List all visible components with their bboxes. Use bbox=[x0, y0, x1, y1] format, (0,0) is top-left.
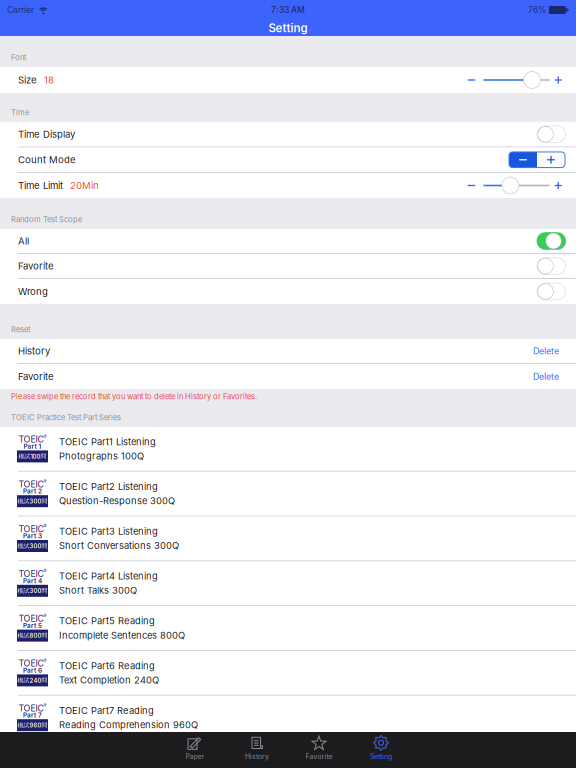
staticText: Please swipe the record that you want to… bbox=[11, 392, 257, 401]
staticText: Time Limit bbox=[18, 180, 63, 191]
button[interactable]: Increase bbox=[554, 179, 562, 191]
staticText: Count Mode bbox=[18, 154, 76, 165]
button[interactable]: Time Display bbox=[0, 122, 576, 147]
staticText: Photographs 100Q bbox=[59, 450, 144, 462]
staticText: Delete bbox=[533, 346, 559, 356]
staticText: History bbox=[245, 752, 269, 761]
staticText: Short Talks 300Q bbox=[59, 585, 137, 596]
staticText: 模試300問 bbox=[17, 587, 47, 594]
staticText: ® bbox=[43, 524, 46, 529]
staticText: Favorite bbox=[18, 260, 54, 272]
staticText: Part 5 bbox=[23, 622, 42, 629]
button[interactable]: Count Mode bbox=[0, 147, 576, 173]
staticText: TOEIC Part5 Reading bbox=[59, 615, 155, 627]
staticText: Favorite bbox=[305, 752, 332, 761]
staticText: Part 2 bbox=[23, 487, 42, 495]
staticText: Incomplete Sentences 800Q bbox=[59, 630, 185, 641]
staticText: Reading Comprehension 960Q bbox=[59, 719, 198, 730]
button[interactable]: TOEIC bbox=[0, 696, 576, 741]
staticText: Favorite bbox=[18, 371, 54, 382]
staticText: 模試100問 bbox=[18, 453, 46, 460]
staticText: Delete bbox=[533, 371, 559, 382]
staticText: Time bbox=[11, 108, 29, 117]
button[interactable]: TOEIC bbox=[0, 651, 576, 696]
staticText: Part 6 bbox=[23, 666, 42, 674]
staticText: 18 bbox=[44, 74, 54, 86]
staticText: Time Display bbox=[18, 128, 75, 140]
staticText: ® bbox=[43, 658, 46, 664]
staticText: Question-Response 300Q bbox=[59, 495, 175, 506]
staticText: Part 7 bbox=[23, 711, 42, 719]
button[interactable]: Decrease bbox=[467, 179, 475, 191]
staticText: Wrong bbox=[18, 286, 48, 297]
staticText: Size bbox=[18, 74, 37, 86]
button[interactable]: Favorite bbox=[0, 364, 576, 389]
button[interactable]: Count up bbox=[537, 152, 565, 167]
staticText: TOEIC bbox=[18, 658, 43, 669]
button[interactable]: Count down bbox=[509, 152, 537, 167]
staticText: ® bbox=[43, 434, 46, 440]
staticText: TOEIC bbox=[18, 613, 43, 624]
staticText: TOEIC Part1 Listening bbox=[59, 436, 156, 447]
staticText: ® bbox=[43, 703, 46, 708]
button[interactable]: Setting bbox=[350, 732, 412, 768]
staticText: ® bbox=[43, 613, 46, 619]
staticText: Part 3 bbox=[23, 532, 42, 540]
button[interactable]: TOEIC bbox=[0, 561, 576, 606]
staticText: Carrier bbox=[7, 5, 34, 15]
staticText: Reset bbox=[11, 325, 30, 334]
button[interactable]: Wrong bbox=[0, 279, 576, 304]
button[interactable]: Favorite bbox=[0, 254, 576, 279]
staticText: TOEIC bbox=[18, 703, 43, 713]
staticText: TOEIC Part4 Listening bbox=[59, 570, 158, 582]
button[interactable]: Favorite bbox=[288, 732, 350, 768]
button[interactable]: All bbox=[0, 229, 576, 254]
staticText: Font bbox=[11, 53, 26, 62]
staticText: 模試240問 bbox=[17, 677, 47, 684]
button[interactable]: Size bbox=[0, 67, 576, 93]
staticText: 模試300問 bbox=[17, 542, 47, 550]
button[interactable]: Decrease bbox=[467, 74, 475, 86]
button[interactable]: TOEIC bbox=[0, 427, 576, 472]
staticText: TOEIC Part3 Listening bbox=[59, 526, 158, 537]
staticText: Random Test Scope bbox=[11, 215, 82, 224]
staticText: Text Completion 240Q bbox=[59, 674, 159, 686]
staticText: ® bbox=[43, 568, 46, 574]
button[interactable]: Increase bbox=[554, 74, 562, 86]
staticText: Setting bbox=[268, 21, 307, 35]
staticText: TOEIC bbox=[18, 434, 43, 445]
staticText: 20Min bbox=[70, 180, 99, 191]
button[interactable]: Delete bbox=[533, 346, 559, 356]
staticText: Part 4 bbox=[23, 577, 42, 585]
staticText: History bbox=[18, 345, 50, 357]
staticText: 模試960問 bbox=[17, 721, 47, 729]
button[interactable]: History bbox=[226, 732, 288, 768]
staticText: Short Conversations 300Q bbox=[59, 540, 179, 551]
staticText: Paper bbox=[185, 752, 204, 761]
staticText: TOEIC Part2 Listening bbox=[59, 481, 158, 492]
button[interactable]: History bbox=[0, 339, 576, 364]
staticText: TOEIC bbox=[18, 524, 43, 534]
button[interactable]: Paper bbox=[164, 732, 226, 768]
button[interactable]: TOEIC bbox=[0, 472, 576, 517]
staticText: TOEIC Practice Test Part Series bbox=[11, 413, 121, 422]
staticText: TOEIC bbox=[18, 568, 43, 579]
button[interactable]: TOEIC bbox=[0, 517, 576, 561]
staticText: Part 1 bbox=[23, 442, 41, 450]
staticText: Setting bbox=[370, 752, 392, 761]
staticText: TOEIC Part7 Reading bbox=[59, 705, 154, 716]
button[interactable]: Delete bbox=[533, 371, 559, 382]
staticText: 模試300問 bbox=[17, 497, 47, 505]
button[interactable]: TOEIC bbox=[0, 606, 576, 651]
button[interactable]: Time Limit bbox=[0, 173, 576, 198]
staticText: 76% bbox=[528, 5, 546, 15]
staticText: 模試800問 bbox=[17, 632, 47, 639]
staticText: ® bbox=[43, 479, 46, 484]
staticText: TOEIC bbox=[18, 479, 43, 489]
staticText: TOEIC Part6 Reading bbox=[59, 660, 155, 671]
staticText: 7:33 AM bbox=[271, 5, 305, 15]
staticText: All bbox=[18, 235, 29, 247]
